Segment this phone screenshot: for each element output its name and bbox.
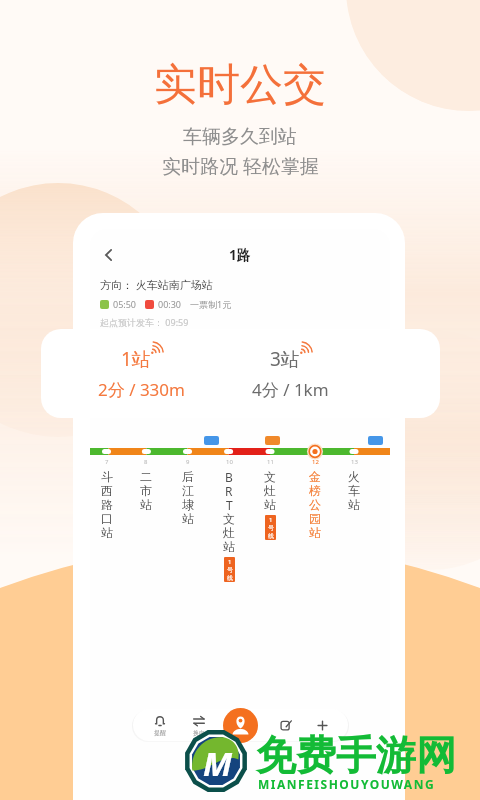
staticText: 起点预计发车： 09:59 bbox=[100, 316, 189, 328]
staticText: MIANFEISHOUYOUWANG bbox=[258, 776, 436, 792]
staticText: 8 bbox=[144, 458, 148, 466]
button[interactable]: Add bbox=[308, 710, 336, 740]
staticText: 站 bbox=[223, 539, 235, 553]
staticText: 13 bbox=[351, 458, 358, 466]
button[interactable]: 换向 bbox=[185, 710, 213, 740]
staticText: 12 bbox=[312, 458, 319, 466]
staticText: 换向 bbox=[193, 729, 205, 737]
button[interactable]: 1站 bbox=[64, 329, 219, 418]
button[interactable]: 13 bbox=[339, 458, 369, 511]
staticText: R bbox=[225, 483, 233, 497]
staticText: 1路 bbox=[229, 246, 251, 264]
staticText: 号 bbox=[227, 566, 233, 574]
staticText: T bbox=[226, 497, 233, 511]
staticText: 二 bbox=[140, 469, 152, 483]
button[interactable]: Back bbox=[90, 241, 390, 269]
button[interactable]: Back bbox=[100, 246, 118, 264]
staticText: 灶 bbox=[223, 525, 235, 539]
staticText: 站 bbox=[182, 511, 194, 525]
staticText: 实时公交 bbox=[154, 58, 326, 112]
staticText: 口 bbox=[101, 511, 113, 525]
staticText: 10 bbox=[226, 458, 233, 466]
staticText: 斗 bbox=[101, 469, 113, 483]
button[interactable]: 8 bbox=[131, 458, 161, 511]
staticText: 园 bbox=[309, 511, 321, 525]
staticText: 11 bbox=[267, 458, 274, 466]
staticText: 线 bbox=[268, 532, 274, 540]
button[interactable]: 7 bbox=[92, 458, 122, 539]
staticText: 一票制1元 bbox=[190, 298, 232, 310]
staticText: 埭 bbox=[182, 497, 194, 511]
staticText: 实时路况 轻松掌握 bbox=[162, 153, 319, 179]
staticText: 号 bbox=[268, 524, 274, 532]
staticText: 站 bbox=[348, 497, 360, 511]
button[interactable]: Locate me bbox=[223, 708, 258, 743]
staticText: 方向： 火车站南广场站 bbox=[100, 277, 213, 292]
staticText: 车 bbox=[348, 483, 360, 497]
staticText: 00:30 bbox=[158, 298, 182, 310]
staticText: 江 bbox=[182, 483, 194, 497]
staticText: 灶 bbox=[264, 483, 276, 497]
staticText: 文 bbox=[223, 511, 235, 525]
staticText: 4分 / 1km bbox=[252, 378, 329, 401]
button[interactable]: Edit bbox=[271, 710, 299, 740]
staticText: 榜 bbox=[309, 483, 321, 497]
staticText: M bbox=[203, 741, 233, 786]
button[interactable]: 9 bbox=[173, 458, 203, 525]
staticText: 后 bbox=[182, 469, 194, 483]
button[interactable]: 提醒 bbox=[146, 710, 174, 740]
staticText: 公 bbox=[309, 497, 321, 511]
button[interactable]: 12 bbox=[300, 458, 330, 539]
staticText: B bbox=[225, 469, 233, 483]
staticText: 2分 / 330m bbox=[98, 378, 185, 401]
staticText: 车辆多久到站 bbox=[183, 125, 297, 149]
staticText: 西 bbox=[101, 483, 113, 497]
staticText: 05:50 bbox=[113, 298, 137, 310]
staticText: 3站 bbox=[270, 346, 300, 372]
staticText: 火 bbox=[348, 469, 360, 483]
staticText: 市 bbox=[140, 483, 152, 497]
staticText: 1站 bbox=[121, 346, 151, 372]
staticText: 站 bbox=[309, 525, 321, 539]
staticText: 路 bbox=[101, 497, 113, 511]
staticText: 9 bbox=[186, 458, 190, 466]
staticText: 金 bbox=[309, 469, 321, 483]
staticText: 文 bbox=[264, 469, 276, 483]
button[interactable]: 3站 bbox=[213, 329, 368, 418]
staticText: 提醒 bbox=[154, 729, 166, 737]
button[interactable]: 11 bbox=[255, 458, 285, 540]
staticText: 站 bbox=[140, 497, 152, 511]
staticText: 线 bbox=[227, 574, 233, 582]
button[interactable]: 10 bbox=[214, 458, 244, 582]
staticText: 1 bbox=[269, 516, 273, 524]
staticText: 站 bbox=[264, 497, 276, 511]
staticText: 7 bbox=[105, 458, 109, 466]
staticText: 站 bbox=[101, 525, 113, 539]
staticText: 1 bbox=[228, 558, 232, 566]
staticText: 免费手游网 bbox=[256, 730, 456, 780]
